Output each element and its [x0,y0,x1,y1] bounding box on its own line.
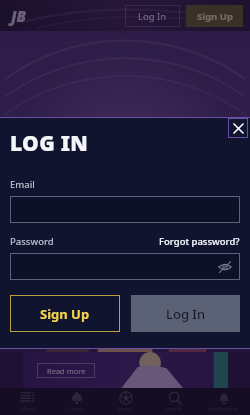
staticText: Menu [21,406,35,413]
button[interactable]: Sign Up [10,295,120,332]
button[interactable]: Email input [10,196,240,223]
button[interactable]: Forgot password? [159,235,240,248]
staticText: Read more [47,366,86,376]
button[interactable]: Menu [5,388,49,415]
staticText: Sign Up [40,305,90,323]
button[interactable]: Notifications [201,388,245,415]
button[interactable]: Close [228,118,248,138]
button[interactable]: Casino [54,388,98,415]
staticText: Search [166,406,182,413]
staticText: Sports [117,406,133,413]
staticText: Log In [166,305,206,323]
button[interactable]: Sports [103,388,147,415]
staticText: LOG IN [10,129,89,158]
button[interactable]: Read more [37,363,95,378]
staticText: Forgot password? [159,235,240,248]
button[interactable]: Sign Up [186,5,243,27]
staticText: Casino [68,406,84,413]
staticText: Password [10,235,54,248]
button[interactable]: Search [152,388,196,415]
button[interactable]: Show password [217,259,233,275]
staticText: Email [10,178,35,191]
staticText: JB [11,6,27,26]
staticText: Sign Up [197,10,233,23]
staticText: Log In [138,10,167,23]
button[interactable]: Log In [131,295,240,332]
staticText: Notifications [208,406,238,413]
button[interactable]: Log In [125,5,180,27]
button[interactable]: Password input [10,253,240,280]
